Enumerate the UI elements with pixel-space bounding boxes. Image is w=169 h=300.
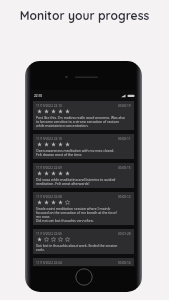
staticText: 00:00:11 (118, 137, 131, 140)
staticText: my nose. (36, 214, 51, 218)
button[interactable]: Home (75, 268, 93, 286)
staticText: 11/19/2022 22:10 (36, 104, 62, 107)
staticText: Felt drowsy most of the time. (36, 152, 83, 156)
button[interactable]: 11/19/2022 22:08 (33, 192, 134, 225)
button[interactable]: 11/19/2022 22:06 (33, 229, 134, 254)
staticText: 11/19/2022 22:08 (36, 195, 62, 198)
button[interactable]: 11/19/2022 22:10 (33, 134, 134, 159)
staticText: 22:10 (34, 94, 43, 98)
staticText: 00:00:12 (118, 195, 131, 198)
button[interactable]: 11/19/2022 22:09 (33, 163, 134, 188)
staticText: 11/19/2022 22:04 (36, 261, 62, 264)
staticText: Post like this. I'm making really good p… (36, 115, 125, 119)
staticText: Monitor your progress (0, 8, 169, 23)
staticText: while maintaining concentration. (36, 123, 89, 127)
staticText: Open awareness meditation with my eyes c… (36, 148, 115, 152)
staticText: 00:00:19 (118, 104, 131, 107)
staticText: Got lost in thoughts about work. Ended t… (36, 243, 118, 247)
staticText: meditation. Felt great afterwards! (36, 181, 90, 185)
staticText: 00:01:28 (118, 232, 131, 235)
staticText: focused on the sensation of my breath at… (36, 210, 117, 214)
staticText: 11/19/2022 22:06 (36, 232, 62, 235)
staticText: 00:00:15 (118, 166, 131, 169)
staticText: 11/19/2022 22:09 (36, 166, 62, 169)
staticText: Single point meditation session where I … (36, 206, 111, 210)
staticText: early. (36, 247, 45, 251)
staticText: to become sensitive to a strong sensatio… (36, 119, 120, 123)
button[interactable]: 11/19/2022 22:04 (33, 258, 134, 266)
staticText: Did yoga while meditating and listening … (36, 177, 116, 181)
button[interactable]: 11/19/2022 22:10 (33, 101, 134, 130)
staticText: 00:00:14 (118, 261, 131, 264)
staticText: Did not get lost thoughts very often. (36, 218, 94, 222)
staticText: 11/19/2022 22:10 (36, 137, 62, 140)
